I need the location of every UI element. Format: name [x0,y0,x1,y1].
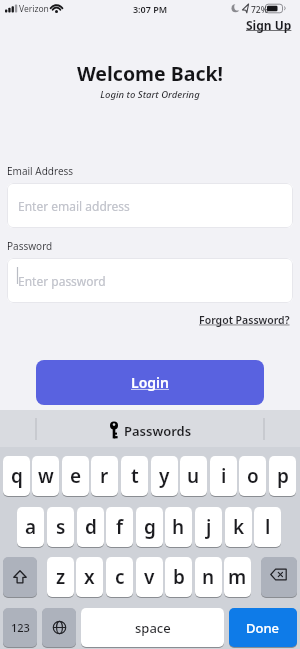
staticText: x [84,564,95,590]
staticText: k [233,514,245,540]
staticText: v [144,564,155,590]
staticText: p [277,463,289,489]
staticText: s [56,514,66,540]
staticText: f [116,514,124,540]
button[interactable]: a [17,507,44,548]
staticText: h [172,514,185,540]
button[interactable]: w [32,456,59,497]
button[interactable]: s [47,507,74,548]
button[interactable]: space [81,608,224,648]
staticText: c [115,564,125,590]
button[interactable]: Login [36,360,264,405]
staticText: z [56,564,66,590]
button[interactable]: i [210,456,237,497]
button[interactable]: Sign Up [246,17,292,33]
staticText: a [25,514,37,540]
button[interactable]: e [62,456,89,497]
staticText: Password [7,239,53,253]
button[interactable]: p [269,456,296,497]
staticText: m [228,564,247,590]
staticText: 123 [11,620,30,635]
staticText: u [187,463,200,489]
staticText: n [202,564,215,590]
button[interactable]: y [151,456,178,497]
button[interactable]: Enter email address [7,183,293,228]
staticText: t [131,463,139,489]
button[interactable]: n [195,557,222,598]
button[interactable]: o [239,456,266,497]
staticText: Passwords [124,422,192,440]
button[interactable]: k [225,507,252,548]
staticText: Enter email address [18,198,130,214]
button[interactable]: l [254,507,281,548]
staticText: Welcome Back! [0,60,300,87]
staticText: o [247,463,259,489]
staticText: w [38,463,54,489]
staticText: b [173,564,185,590]
staticText: d [85,514,97,540]
button[interactable]: m [224,557,251,598]
staticText: i [221,463,227,489]
button[interactable]: f [106,507,133,548]
staticText: y [159,463,170,489]
staticText: Email Address [7,164,74,178]
staticText: Done [246,619,280,637]
button[interactable]: t [121,456,148,497]
staticText: j [206,514,212,540]
button[interactable]: Done [229,608,297,648]
button[interactable]: 123 [3,608,37,648]
staticText: Login [131,373,169,392]
button[interactable]: r [91,456,118,497]
button[interactable] [3,557,37,598]
button[interactable]: v [136,557,163,598]
button[interactable] [261,557,297,598]
button[interactable]: q [3,456,30,497]
button[interactable]: c [106,557,133,598]
button[interactable]: z [47,557,74,598]
staticText: Login to Start Ordering [0,88,300,101]
staticText: 3:07 PM [0,3,300,15]
staticText: 72% [251,4,268,16]
staticText: q [11,463,23,489]
button[interactable]: h [165,507,192,548]
button[interactable]: u [180,456,207,497]
staticText: g [144,514,156,540]
button[interactable]: j [195,507,222,548]
staticText: Verizon [19,3,49,15]
button[interactable]: Forgot Password? [199,313,290,327]
button[interactable]: Passwords [0,410,300,447]
staticText: e [70,463,82,489]
staticText: l [265,514,271,540]
button[interactable] [42,608,76,648]
button[interactable]: Enter password [7,258,293,303]
staticText: r [100,463,109,489]
button[interactable]: g [136,507,163,548]
staticText: Enter password [18,273,106,289]
button[interactable]: b [165,557,192,598]
button[interactable]: x [76,557,103,598]
staticText: space [135,619,171,637]
button[interactable]: d [77,507,104,548]
